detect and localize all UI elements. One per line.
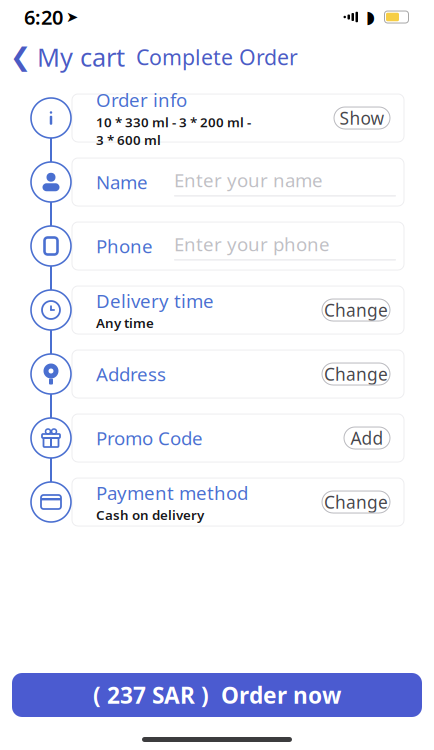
- staticText: Order info: [96, 87, 187, 112]
- staticText: Enter your name: [174, 168, 323, 192]
- staticText: ( 237 SAR ) Order now: [93, 680, 341, 710]
- staticText: ❮: [10, 43, 31, 71]
- staticText: ➤: [66, 9, 78, 25]
- staticText: 6:20: [24, 4, 63, 30]
- button[interactable]: Change: [322, 299, 390, 321]
- staticText: ◗: [366, 7, 375, 27]
- button[interactable]: Show: [334, 107, 390, 129]
- staticText: Complete Order: [136, 43, 298, 71]
- staticText: Name: [96, 170, 148, 194]
- staticText: Change: [324, 362, 388, 385]
- staticText: Payment method: [96, 480, 248, 505]
- staticText: Promo Code: [96, 426, 203, 450]
- staticText: Any time: [96, 314, 154, 332]
- staticText: Change: [324, 298, 388, 321]
- staticText: 10 * 330 ml - 3 * 200 ml - 3 * 600 ml: [96, 113, 251, 149]
- staticText: Add: [350, 426, 383, 449]
- staticText: Address: [96, 362, 166, 386]
- button[interactable]: ❮: [0, 35, 133, 79]
- button[interactable]: Add: [344, 427, 390, 449]
- staticText: Show: [339, 106, 384, 129]
- staticText: Enter your phone: [174, 232, 330, 256]
- staticText: Phone: [96, 234, 153, 258]
- staticText: Delivery time: [96, 288, 214, 313]
- staticText: My cart: [37, 40, 125, 74]
- button[interactable]: Change: [322, 363, 390, 385]
- button[interactable]: ( 237 SAR ) Order now: [12, 673, 422, 717]
- staticText: Cash on delivery: [96, 506, 204, 524]
- button[interactable]: Change: [322, 491, 390, 513]
- staticText: Change: [324, 490, 388, 513]
